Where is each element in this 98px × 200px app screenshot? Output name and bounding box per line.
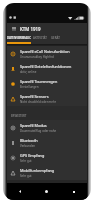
button[interactable]: Back	[7, 183, 33, 200]
staticText: Einstellungen	[20, 85, 39, 89]
staticText: Sparefil Tourenregen	[20, 79, 58, 84]
button[interactable]: Sparefil Modus	[7, 120, 87, 135]
staticText: DATENVERBRAUCH	[7, 36, 31, 40]
staticText: Sparefil Sensors	[20, 94, 49, 99]
staticText: Sehr gut	[20, 159, 32, 163]
staticText: GERÄT	[51, 36, 60, 40]
button[interactable]: DATENVERBRAUCH	[7, 34, 31, 42]
staticText: ERWEITERT	[11, 114, 27, 118]
staticText: GPS Empfang	[20, 153, 45, 158]
staticText: Mobilfunkempfang	[20, 168, 55, 173]
staticText: Sparefil Detelefonfunktionen	[20, 64, 72, 69]
button[interactable]: Home	[33, 183, 60, 200]
staticText: aktiv, online	[20, 70, 37, 74]
staticText: Sparefil Modus	[20, 123, 47, 128]
staticText: AKTIVITÄT	[33, 36, 47, 40]
staticText: Sehr gut	[20, 174, 32, 178]
staticText: Unununurukkey Highfnd	[20, 55, 54, 59]
button[interactable]: Recent apps	[60, 183, 87, 200]
button[interactable]: Open navigation menu	[9, 24, 18, 33]
button[interactable]: Sparefil Tourenregen	[7, 76, 87, 91]
button[interactable]: GERÄT	[48, 34, 63, 42]
button[interactable]: Sparefil eCall Notrufunktion	[7, 46, 87, 61]
button[interactable]: Bluetooth	[7, 135, 87, 150]
button[interactable]: AKTIVITÄT	[31, 34, 48, 42]
staticText: KTM 1919	[20, 26, 41, 32]
button[interactable]: Sparefil Sensors	[7, 91, 87, 106]
button[interactable]: GPS Empfang	[7, 150, 87, 165]
staticText: Nicht druckfeld oder mehr	[20, 100, 56, 104]
button[interactable]: Mobilfunkempfang	[7, 165, 87, 180]
staticText: Dauernuteilflug oder nahe	[20, 129, 57, 133]
staticText: Sparefil eCall Notrufunktion	[20, 49, 70, 54]
button[interactable]: Sparefil Detelefonfunktionen	[7, 61, 87, 76]
staticText: Bluetooth	[20, 138, 38, 143]
staticText: Verbunden	[20, 144, 36, 148]
